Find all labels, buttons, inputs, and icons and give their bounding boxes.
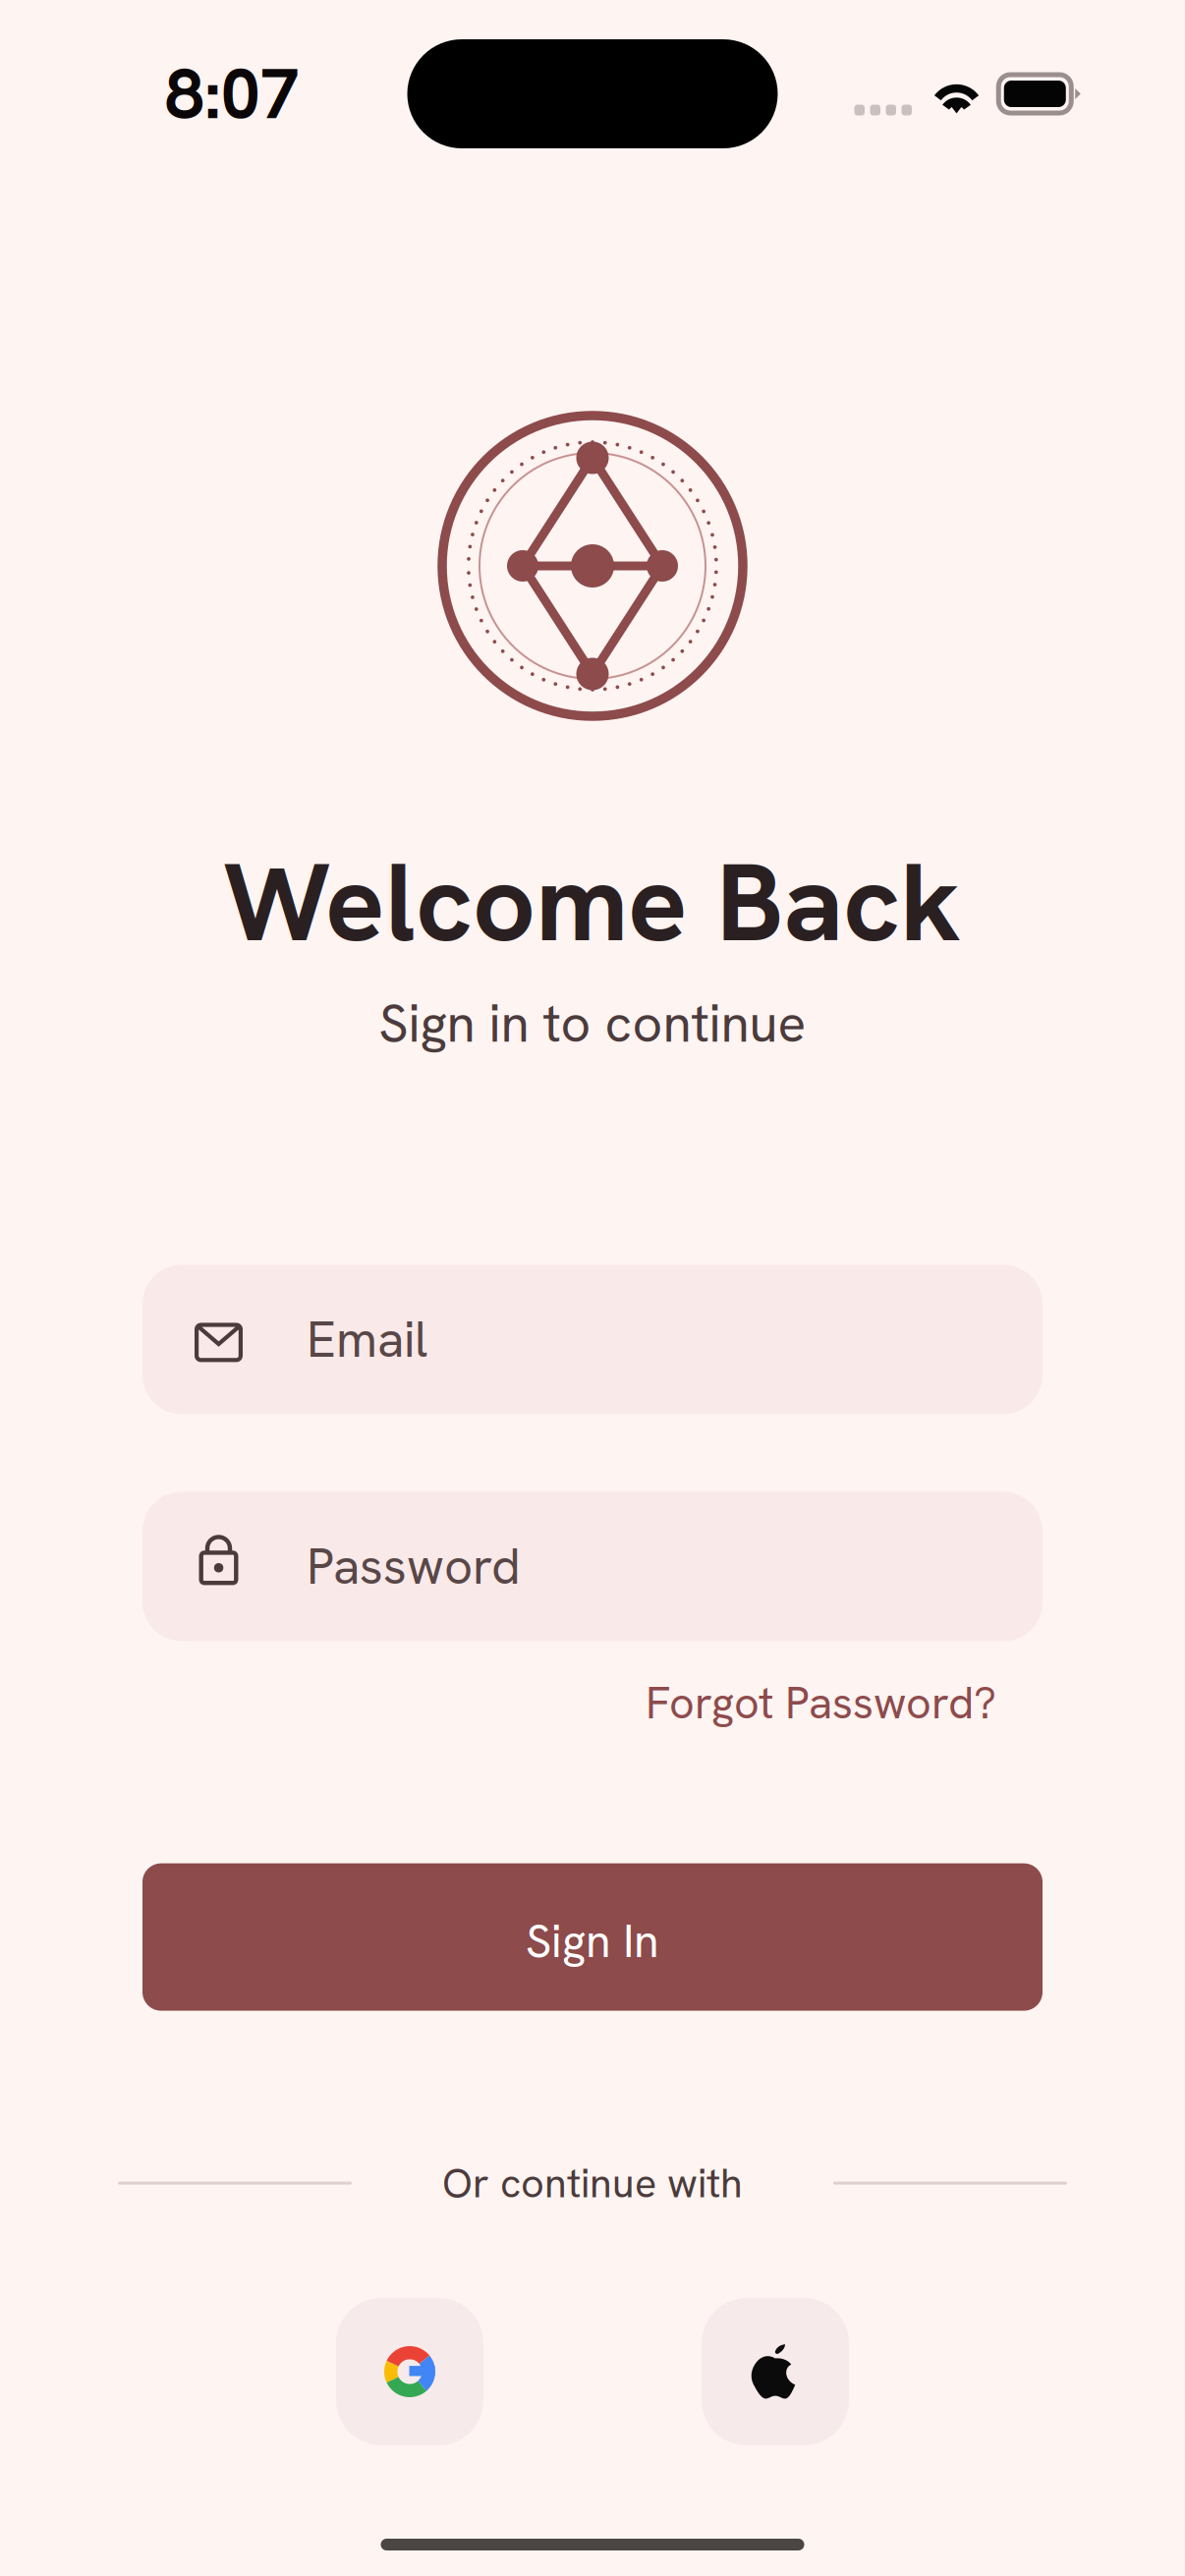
button[interactable]: Sign in with Google xyxy=(336,2298,483,2445)
button[interactable]: Sign In xyxy=(142,1863,1043,2011)
button[interactable]: Sign in with Apple xyxy=(702,2298,849,2445)
button[interactable]: Email xyxy=(142,1265,1043,1414)
staticText: Forgot Password? xyxy=(646,1674,996,1732)
staticText: Password xyxy=(307,1534,521,1599)
button[interactable]: Password xyxy=(142,1492,1043,1641)
staticText: Sign In xyxy=(526,1911,659,1971)
staticText: Email xyxy=(307,1307,427,1372)
staticText: Welcome Back xyxy=(223,830,962,974)
staticText: Sign in to continue xyxy=(379,989,806,1058)
button[interactable]: Forgot Password? xyxy=(646,1670,1043,1727)
staticText: Or continue with xyxy=(442,2157,743,2210)
staticText: 8:07 xyxy=(165,49,300,139)
